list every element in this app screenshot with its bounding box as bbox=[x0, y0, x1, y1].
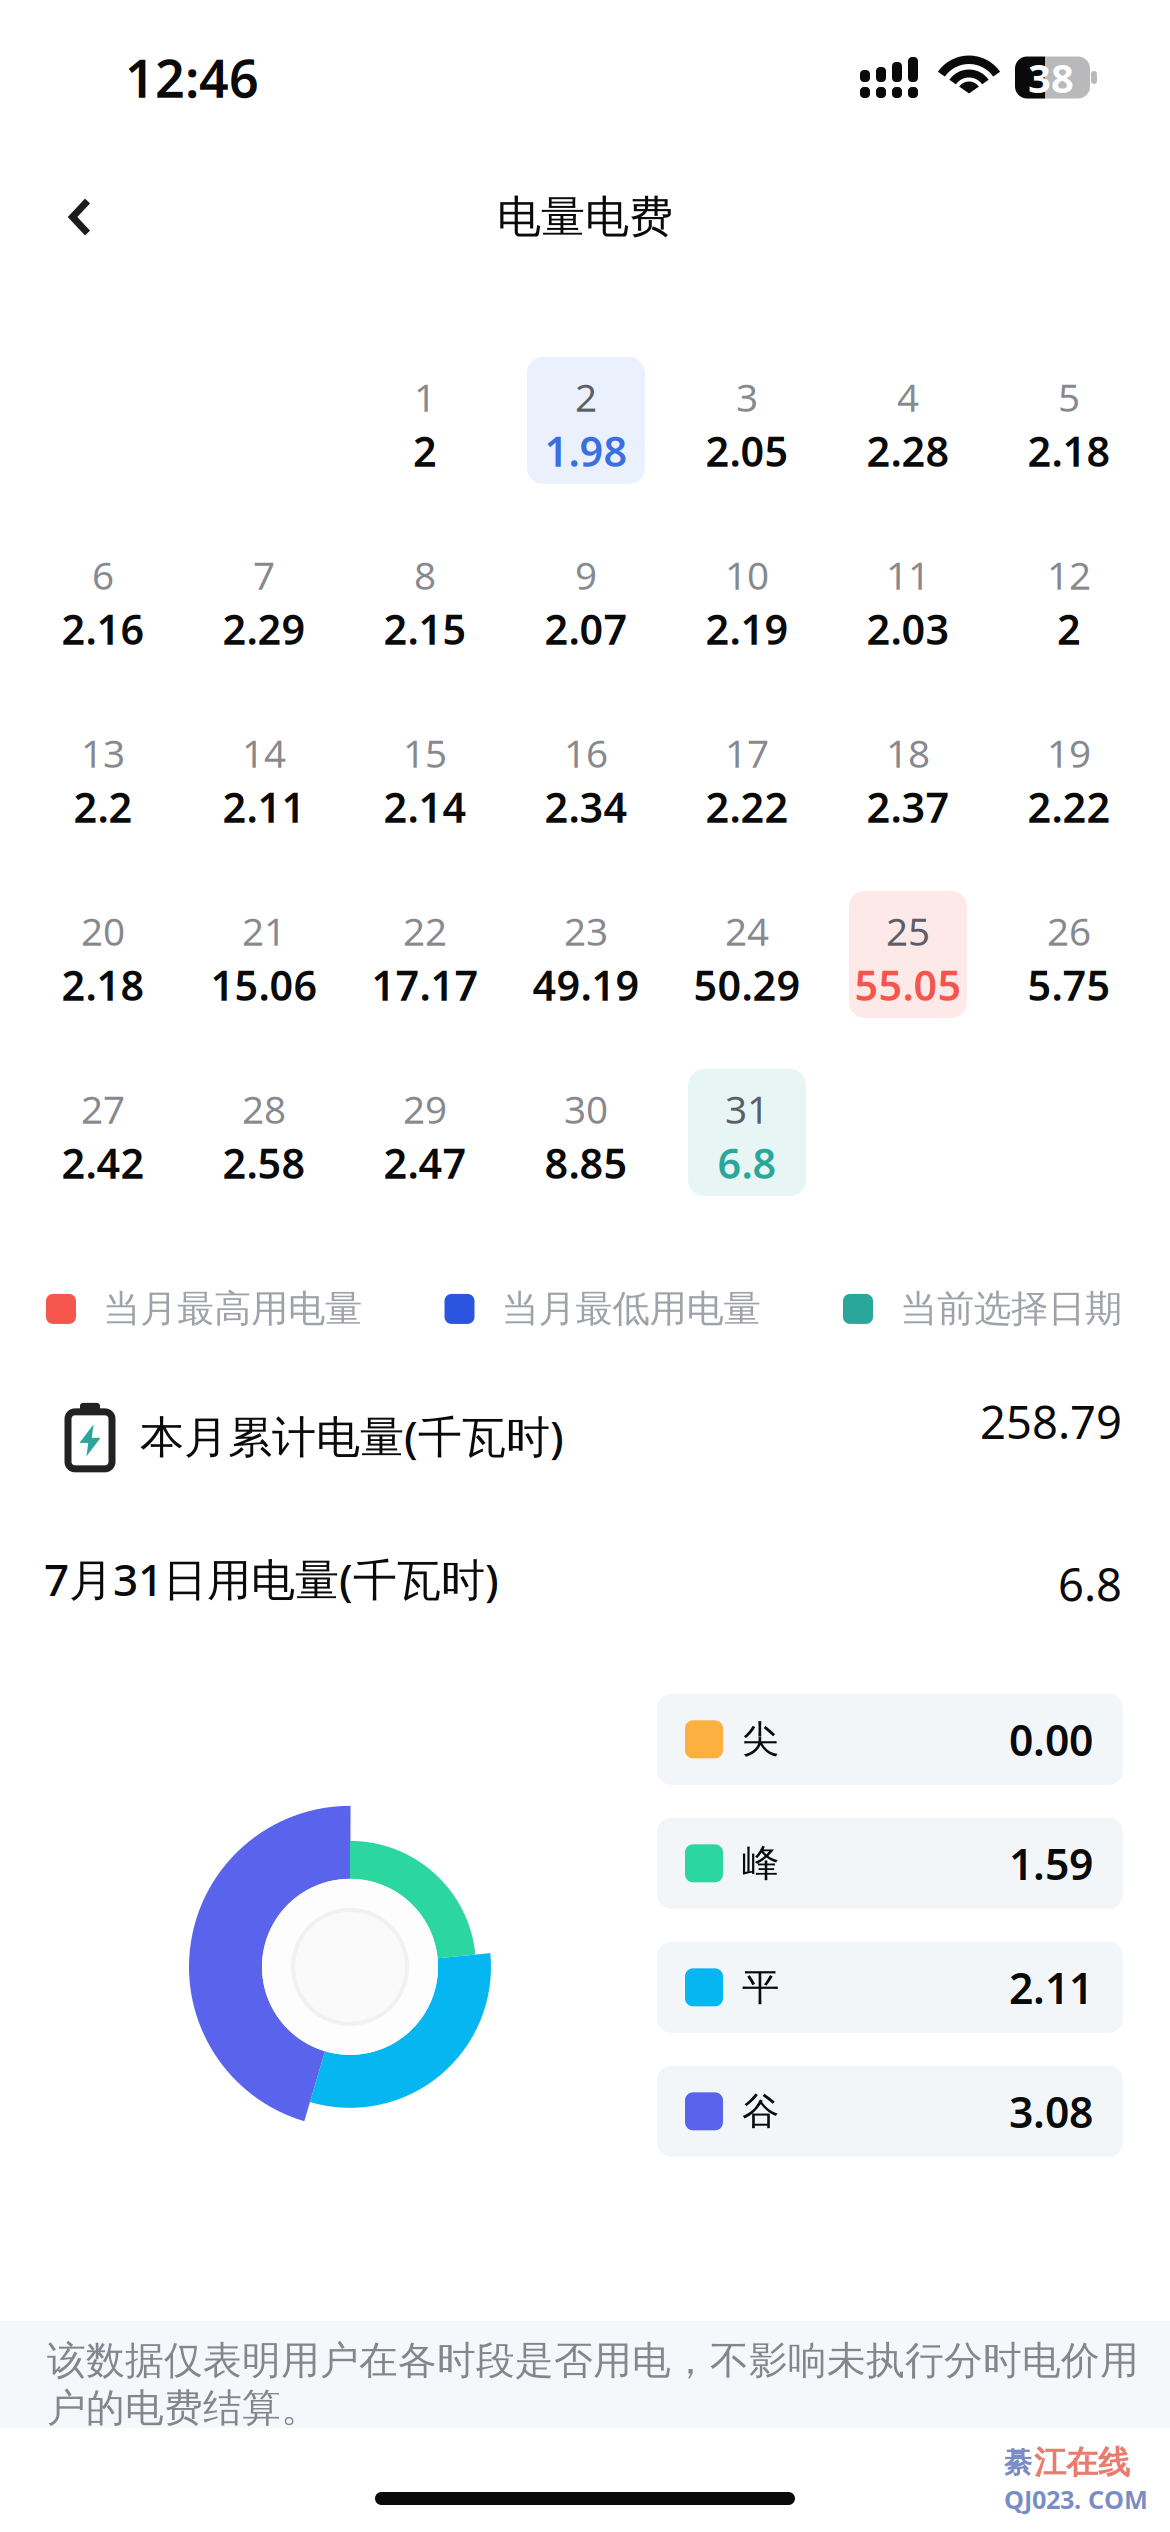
button[interactable]: 7 bbox=[205, 535, 323, 662]
staticText: 綦 bbox=[1004, 2445, 1032, 2480]
staticText: QJ023. COM bbox=[1004, 2482, 1148, 2516]
staticText: 15 bbox=[403, 727, 447, 778]
staticText: 1.59 bbox=[1009, 1835, 1093, 1892]
button[interactable]: 16 bbox=[527, 713, 645, 840]
button[interactable]: 17 bbox=[688, 713, 806, 840]
staticText: 4 bbox=[897, 371, 919, 422]
button[interactable]: 30 bbox=[527, 1069, 645, 1196]
button[interactable]: 2 bbox=[527, 357, 645, 484]
staticText: 2.37 bbox=[866, 779, 949, 834]
button[interactable]: 21 bbox=[205, 891, 323, 1018]
staticText: 6 bbox=[92, 549, 114, 600]
staticText: 当月最高用电量 bbox=[103, 1286, 362, 1332]
button[interactable]: 26 bbox=[1010, 891, 1128, 1018]
staticText: 电量电费 bbox=[497, 190, 673, 244]
button[interactable]: 28 bbox=[205, 1069, 323, 1196]
button[interactable]: 10 bbox=[688, 535, 806, 662]
staticText: 3 bbox=[736, 371, 758, 422]
staticText: 25 bbox=[886, 905, 930, 956]
staticText: 14 bbox=[242, 727, 286, 778]
staticText: 1 bbox=[414, 371, 436, 422]
button[interactable]: 18 bbox=[849, 713, 967, 840]
button[interactable]: 5 bbox=[1010, 357, 1128, 484]
staticText: 55.05 bbox=[854, 957, 961, 1012]
staticText: 2.22 bbox=[705, 779, 788, 834]
button[interactable]: 6 bbox=[44, 535, 162, 662]
staticText: 258.79 bbox=[980, 1391, 1122, 1451]
staticText: 17 bbox=[725, 727, 769, 778]
button[interactable]: 3 bbox=[688, 357, 806, 484]
staticText: 1.98 bbox=[544, 423, 627, 478]
staticText: 本月累计电量(千瓦时) bbox=[140, 1407, 564, 1465]
button[interactable]: 1 bbox=[366, 357, 484, 484]
staticText: 2.18 bbox=[1027, 423, 1110, 478]
staticText: 7月31日用电量(千瓦时) bbox=[44, 1550, 499, 1608]
staticText: 该数据仅表明用户在各时段是否用电，不影响未执行分时电价用户的电费结算。 bbox=[47, 2337, 1139, 2432]
staticText: 当月最低用电量 bbox=[501, 1286, 760, 1332]
staticText: 峰 bbox=[742, 1840, 779, 1886]
button[interactable]: 平 bbox=[657, 1942, 1123, 2033]
button[interactable]: 8 bbox=[366, 535, 484, 662]
staticText: 38 bbox=[1028, 51, 1074, 104]
button[interactable]: 19 bbox=[1010, 713, 1128, 840]
button[interactable]: 15 bbox=[366, 713, 484, 840]
staticText: 5 bbox=[1058, 371, 1080, 422]
staticText: 2.11 bbox=[222, 779, 305, 834]
button[interactable]: 返回 bbox=[0, 165, 160, 269]
staticText: 2.14 bbox=[383, 779, 466, 834]
staticText: 2.05 bbox=[705, 423, 788, 478]
button[interactable]: 14 bbox=[205, 713, 323, 840]
staticText: 7 bbox=[253, 549, 275, 600]
button[interactable]: 13 bbox=[44, 713, 162, 840]
staticText: 16 bbox=[564, 727, 608, 778]
staticText: 6.8 bbox=[1058, 1554, 1122, 1614]
button[interactable]: 20 bbox=[44, 891, 162, 1018]
button[interactable]: 12 bbox=[1010, 535, 1128, 662]
staticText: 江在线 bbox=[1034, 2443, 1130, 2482]
staticText: 5.75 bbox=[1027, 957, 1110, 1012]
button[interactable]: 尖 bbox=[657, 1694, 1123, 1785]
staticText: 24 bbox=[725, 905, 769, 956]
staticText: 2 bbox=[575, 371, 597, 422]
button[interactable]: 31 bbox=[688, 1069, 806, 1196]
staticText: 13 bbox=[81, 727, 125, 778]
staticText: 平 bbox=[742, 1964, 779, 2010]
button[interactable]: 27 bbox=[44, 1069, 162, 1196]
staticText: 30 bbox=[564, 1083, 608, 1134]
staticText: 50.29 bbox=[693, 957, 800, 1012]
staticText: 2.03 bbox=[866, 601, 949, 656]
staticText: 19 bbox=[1047, 727, 1091, 778]
button[interactable]: 9 bbox=[527, 535, 645, 662]
staticText: 谷 bbox=[742, 2088, 779, 2134]
staticText: 20 bbox=[81, 905, 125, 956]
button[interactable]: 25 bbox=[849, 891, 967, 1018]
button[interactable]: 22 bbox=[366, 891, 484, 1018]
staticText: 49.19 bbox=[532, 957, 639, 1012]
staticText: 2 bbox=[413, 423, 437, 478]
staticText: 8 bbox=[414, 549, 436, 600]
button[interactable]: 4 bbox=[849, 357, 967, 484]
staticText: 2.29 bbox=[222, 601, 305, 656]
staticText: 尖 bbox=[742, 1716, 779, 1762]
button[interactable]: 峰 bbox=[657, 1818, 1123, 1909]
staticText: 11 bbox=[886, 549, 930, 600]
button[interactable]: 11 bbox=[849, 535, 967, 662]
staticText: 当前选择日期 bbox=[900, 1286, 1122, 1332]
staticText: 29 bbox=[403, 1083, 447, 1134]
staticText: 9 bbox=[575, 549, 597, 600]
staticText: 15.06 bbox=[210, 957, 317, 1012]
staticText: 12 bbox=[1047, 549, 1091, 600]
button[interactable]: 谷 bbox=[657, 2066, 1123, 2157]
staticText: 26 bbox=[1047, 905, 1091, 956]
staticText: 23 bbox=[564, 905, 608, 956]
staticText: 2.16 bbox=[61, 601, 144, 656]
staticText: 2.11 bbox=[1009, 1959, 1093, 2016]
staticText: 2.28 bbox=[866, 423, 949, 478]
button[interactable]: 24 bbox=[688, 891, 806, 1018]
button[interactable]: 29 bbox=[366, 1069, 484, 1196]
staticText: 2.58 bbox=[222, 1135, 305, 1190]
staticText: 2.18 bbox=[61, 957, 144, 1012]
staticText: 21 bbox=[242, 905, 286, 956]
button[interactable]: 23 bbox=[527, 891, 645, 1018]
staticText: 27 bbox=[81, 1083, 125, 1134]
